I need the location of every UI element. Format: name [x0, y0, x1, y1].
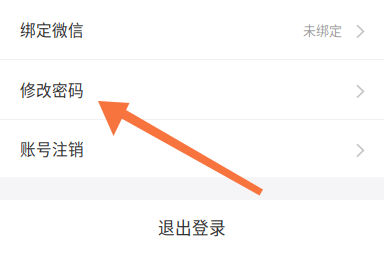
button[interactable]: 绑定微信: [0, 0, 384, 59]
button[interactable]: 账号注销: [0, 120, 384, 177]
staticText: 账号注销: [20, 137, 84, 160]
staticText: 绑定微信: [20, 18, 84, 41]
button[interactable]: 修改密码: [0, 60, 384, 119]
staticText: 修改密码: [20, 78, 84, 101]
button[interactable]: 退出登录: [0, 200, 384, 254]
staticText: 退出登录: [158, 215, 226, 239]
staticText: 未绑定: [303, 20, 342, 39]
